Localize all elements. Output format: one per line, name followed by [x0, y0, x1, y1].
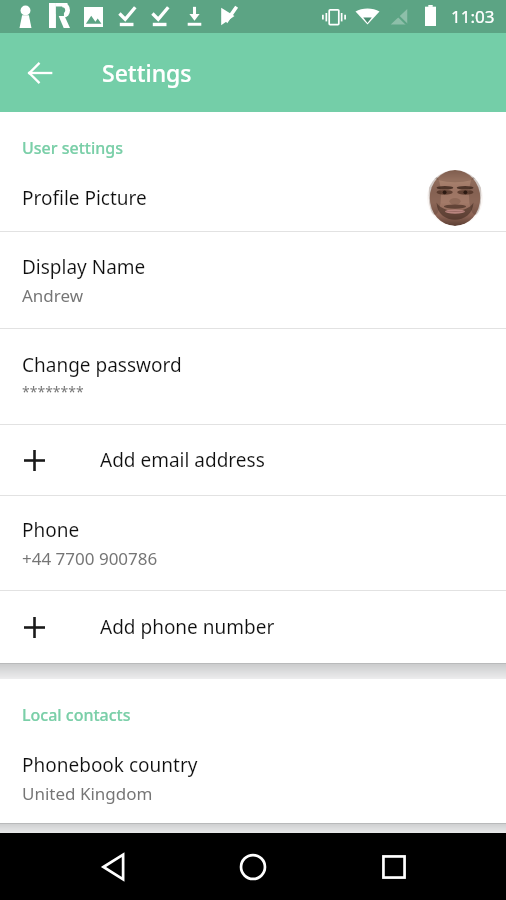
button[interactable]: Add email address [0, 425, 506, 495]
staticText: Andrew [22, 284, 84, 307]
staticText: 11:03 [451, 5, 495, 28]
button[interactable]: Back [12, 45, 68, 101]
staticText: Add email address [100, 447, 265, 473]
button[interactable]: Change password [0, 329, 506, 424]
staticText: ******** [22, 382, 84, 401]
staticText: Local contacts [22, 704, 131, 726]
button[interactable]: Display Name [0, 232, 506, 328]
button[interactable]: Phone [0, 496, 506, 590]
button[interactable]: Profile Picture [0, 165, 506, 231]
staticText: User settings [22, 137, 123, 159]
button[interactable]: Home [223, 837, 283, 897]
staticText: Phone [22, 517, 80, 543]
staticText: +44 7700 900786 [22, 547, 158, 570]
staticText: United Kingdom [22, 782, 153, 805]
staticText: Add phone number [100, 614, 275, 640]
button[interactable]: Phonebook country [0, 733, 506, 823]
button[interactable]: Back [84, 837, 144, 897]
button[interactable]: Recent apps [364, 837, 424, 897]
staticText: Display Name [22, 254, 146, 280]
button[interactable]: Add phone number [0, 591, 506, 663]
staticText: Profile Picture [22, 185, 147, 211]
staticText: Change password [22, 352, 182, 378]
staticText: Phonebook country [22, 752, 198, 778]
staticText: Settings [102, 57, 192, 88]
